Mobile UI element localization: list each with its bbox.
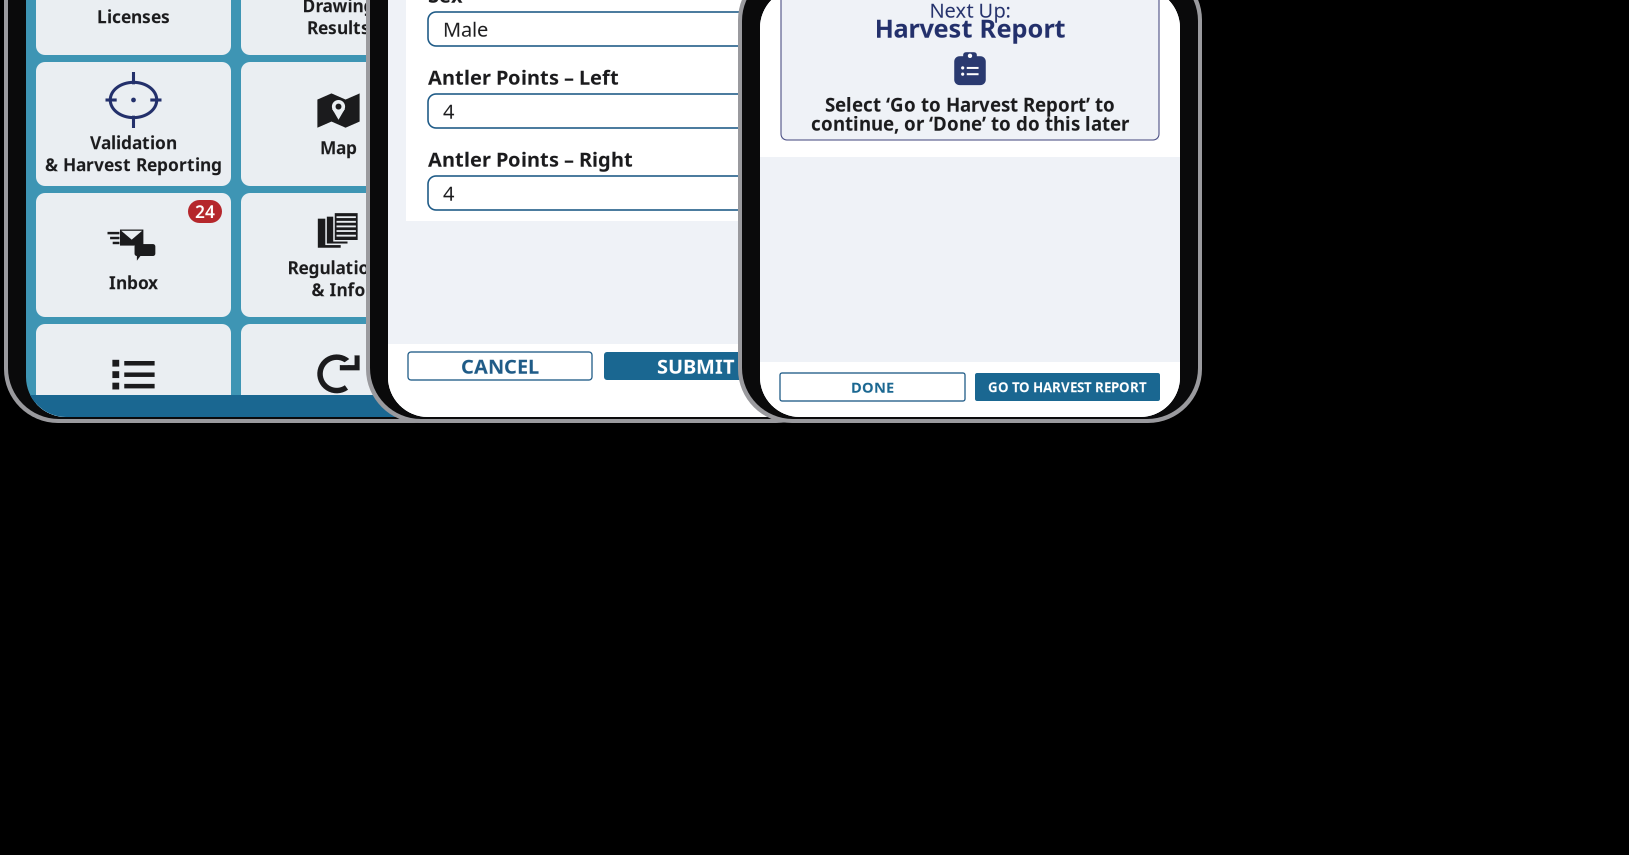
staticText: Licenses bbox=[97, 5, 170, 28]
staticText: 4 bbox=[443, 98, 454, 124]
staticText: GO TO HARVEST REPORT bbox=[988, 378, 1147, 396]
staticText: Harvest Report bbox=[874, 11, 1065, 45]
staticText: continue, or ‘Done’ to do this later bbox=[811, 111, 1129, 136]
button[interactable]: Drawing bbox=[241, 0, 436, 55]
staticText: Drawing bbox=[302, 0, 374, 17]
button[interactable]: DONE bbox=[780, 373, 965, 401]
button[interactable]: Inbox bbox=[36, 193, 231, 317]
staticText: My Items bbox=[92, 398, 174, 421]
button[interactable]: My Items bbox=[36, 324, 231, 448]
staticText: Antler Points – Left bbox=[428, 64, 619, 90]
staticText: & Info bbox=[311, 278, 365, 301]
button[interactable]: Regulations bbox=[241, 193, 436, 317]
button[interactable]: Licenses bbox=[36, 0, 231, 55]
button[interactable]: Validation bbox=[36, 62, 231, 186]
button[interactable]: Map bbox=[241, 62, 436, 186]
staticText: & Harvest Reporting bbox=[45, 153, 222, 176]
staticText: SUBMIT bbox=[657, 353, 735, 379]
staticText: Results bbox=[307, 16, 370, 39]
button[interactable]: CANCEL bbox=[408, 352, 592, 380]
staticText: Male bbox=[443, 16, 488, 42]
staticText: Sex bbox=[428, 0, 463, 8]
staticText: Sync bbox=[318, 398, 358, 421]
button[interactable]: SUBMIT bbox=[604, 352, 788, 380]
staticText: Select ‘Go to Harvest Report’ to bbox=[825, 92, 1115, 117]
staticText: Antler Points – Right bbox=[428, 146, 633, 172]
staticText: Map bbox=[320, 136, 357, 159]
staticText: CANCEL bbox=[461, 353, 539, 379]
staticText: Regulations bbox=[287, 256, 389, 279]
button[interactable]: GO TO HARVEST REPORT bbox=[975, 373, 1160, 401]
staticText: 4 bbox=[443, 180, 454, 206]
staticText: Validation bbox=[90, 131, 177, 154]
button[interactable]: Sync bbox=[241, 324, 436, 448]
staticText: Inbox bbox=[109, 271, 158, 294]
staticText: 24 bbox=[195, 200, 215, 223]
staticText: DONE bbox=[851, 377, 894, 397]
staticText: Next Up: bbox=[929, 0, 1010, 23]
